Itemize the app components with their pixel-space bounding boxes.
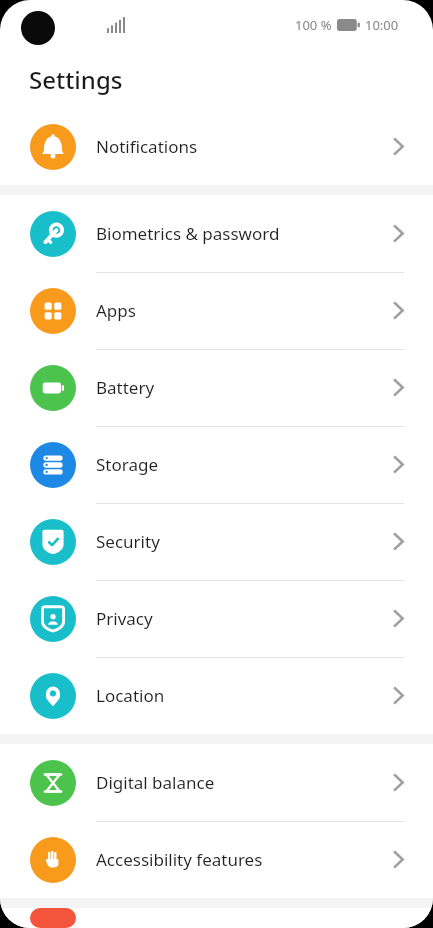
staticText: Security bbox=[96, 530, 160, 553]
staticText: 100 % bbox=[295, 16, 332, 34]
button[interactable]: Notifications bbox=[0, 108, 433, 185]
button[interactable]: Storage bbox=[0, 426, 433, 503]
button[interactable]: Digital balance bbox=[0, 744, 433, 821]
button[interactable]: Battery bbox=[0, 349, 433, 426]
staticText: Settings bbox=[29, 63, 123, 96]
staticText: Location bbox=[96, 684, 165, 707]
button[interactable]: Privacy bbox=[0, 580, 433, 657]
staticText: 10:00 bbox=[365, 16, 399, 34]
staticText: Biometrics & password bbox=[96, 222, 280, 245]
button[interactable]: Apps bbox=[0, 272, 433, 349]
button[interactable]: Biometrics & password bbox=[0, 195, 433, 272]
button[interactable] bbox=[0, 908, 433, 928]
staticText: Digital balance bbox=[96, 771, 215, 794]
staticText: Apps bbox=[96, 299, 136, 322]
button[interactable]: Accessibility features bbox=[0, 821, 433, 898]
button[interactable]: Location bbox=[0, 657, 433, 734]
staticText: Battery bbox=[96, 376, 155, 399]
staticText: Accessibility features bbox=[96, 848, 263, 871]
staticText: Privacy bbox=[96, 607, 153, 630]
staticText: Notifications bbox=[96, 135, 198, 158]
button[interactable]: Security bbox=[0, 503, 433, 580]
staticText: Storage bbox=[96, 453, 159, 476]
